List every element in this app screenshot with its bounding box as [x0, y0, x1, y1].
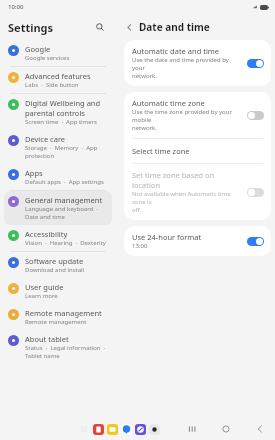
- staticText: Status · Legal information ·: [25, 344, 106, 352]
- button[interactable]: User guide: [4, 278, 112, 304]
- staticText: Google: [25, 44, 51, 54]
- staticText: network.: [132, 124, 157, 132]
- staticText: Not available when Automatic time zone i…: [132, 190, 243, 206]
- staticText: Google services: [25, 54, 70, 62]
- staticText: 13:00: [132, 242, 148, 250]
- staticText: User guide: [25, 282, 64, 292]
- staticText: General management: [25, 195, 103, 205]
- staticText: Remote management: [25, 308, 102, 318]
- button[interactable]: General management: [4, 191, 112, 225]
- staticText: Screen time · App timers: [25, 118, 97, 126]
- button[interactable]: Select time zone: [124, 139, 271, 163]
- staticText: Use the date and time provided by your: [132, 56, 243, 72]
- staticText: Select time zone: [132, 146, 190, 156]
- staticText: Use the time zone provided by your mobil…: [132, 108, 243, 124]
- staticText: Device care: [25, 134, 66, 144]
- staticText: Language and keyboard ·: [25, 205, 98, 213]
- button[interactable]: Set time zone based on location: [124, 164, 271, 220]
- staticText: Digital Wellbeing and: [25, 98, 101, 108]
- button[interactable]: Recents: [185, 422, 199, 436]
- button[interactable]: App: [121, 424, 132, 435]
- staticText: 10:00: [8, 3, 24, 11]
- button[interactable]: Google: [4, 40, 112, 66]
- staticText: Use 24-hour format: [132, 232, 202, 242]
- staticText: Apps: [25, 168, 43, 178]
- staticText: Set time zone based on location: [132, 170, 243, 190]
- staticText: Vision · Hearing · Dexterity: [25, 239, 106, 247]
- staticText: Remote management: [25, 318, 87, 326]
- button[interactable]: Accessibility: [4, 225, 112, 251]
- button[interactable]: Device care: [4, 130, 112, 164]
- staticText: Labs · Side button: [25, 81, 79, 89]
- button[interactable]: Automatic date and time: [124, 40, 271, 86]
- button[interactable]: Back: [253, 422, 267, 436]
- staticText: parental controls: [25, 108, 85, 118]
- button[interactable]: Search: [92, 19, 108, 35]
- staticText: Date and time: [139, 20, 210, 34]
- staticText: Automatic time zone: [132, 98, 205, 108]
- button[interactable]: Toggle: [247, 111, 264, 120]
- staticText: Software update: [25, 256, 84, 266]
- staticText: Download and install: [25, 266, 85, 274]
- staticText: Learn more: [25, 292, 58, 300]
- staticText: Storage · Memory · App: [25, 144, 98, 152]
- button[interactable]: App: [107, 424, 118, 435]
- staticText: Tablet name: [25, 352, 60, 360]
- button[interactable]: Apps: [4, 164, 112, 190]
- button[interactable]: App: [135, 424, 146, 435]
- button[interactable]: Use 24-hour format: [124, 226, 271, 256]
- button[interactable]: Back: [122, 20, 136, 34]
- staticText: Date and time: [25, 213, 65, 221]
- staticText: Advanced features: [25, 71, 91, 81]
- staticText: About tablet: [25, 334, 69, 344]
- button[interactable]: Home: [219, 422, 233, 436]
- staticText: Default apps · App settings: [25, 178, 104, 186]
- button[interactable]: Advanced features: [4, 67, 112, 93]
- button[interactable]: App: [93, 424, 104, 435]
- staticText: network.: [132, 72, 157, 80]
- button[interactable]: Remote management: [4, 304, 112, 330]
- staticText: off.: [132, 206, 142, 214]
- staticText: protection: [25, 152, 55, 160]
- button[interactable]: Toggle: [247, 237, 264, 246]
- button[interactable]: Toggle: [247, 188, 264, 197]
- staticText: Settings: [8, 20, 54, 35]
- button[interactable]: Software update: [4, 252, 112, 278]
- button[interactable]: Digital Wellbeing and: [4, 94, 112, 130]
- button[interactable]: Toggle: [247, 59, 264, 68]
- staticText: Automatic date and time: [132, 46, 220, 56]
- staticText: Accessibility: [25, 229, 68, 239]
- button[interactable]: About tablet: [4, 330, 112, 364]
- button[interactable]: App: [149, 424, 160, 435]
- button[interactable]: Automatic time zone: [124, 92, 271, 138]
